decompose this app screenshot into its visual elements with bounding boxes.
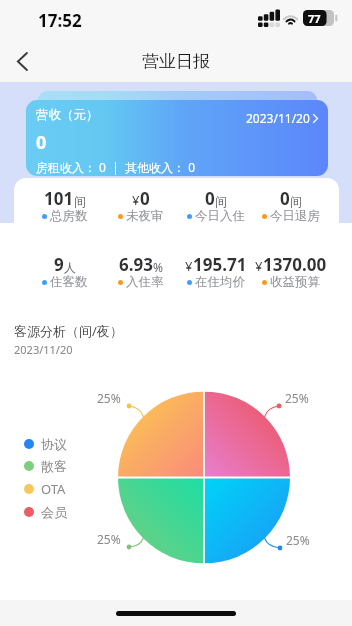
staticText: ¥ — [255, 257, 263, 275]
staticText: 77 — [308, 11, 321, 26]
staticText: 17:52 — [38, 9, 82, 32]
staticText: ¥ — [185, 257, 193, 275]
button[interactable]: Back — [0, 40, 44, 82]
staticText: 1370.00 — [263, 253, 327, 276]
staticText: 间 — [290, 194, 302, 209]
staticText: 在住均价 — [195, 274, 245, 290]
staticText: 195.71 — [193, 253, 247, 276]
staticText: 住客数 — [50, 274, 88, 290]
staticText: 25% — [286, 532, 310, 548]
staticText: 总房数 — [50, 208, 88, 224]
staticText: ¥ — [132, 191, 140, 209]
staticText: 今日退房 — [270, 208, 320, 224]
staticText: 2023/11/20 — [14, 342, 73, 357]
staticText: 协议 — [41, 436, 67, 452]
staticText: 2023/11/20 — [246, 110, 310, 126]
staticText: 101 — [44, 187, 74, 210]
staticText: 人 — [64, 260, 76, 275]
staticText: 营收（元） — [36, 107, 99, 123]
staticText: 25% — [285, 390, 309, 406]
staticText: 0 — [36, 130, 47, 155]
staticText: % — [153, 259, 163, 275]
staticText: 25% — [97, 390, 121, 406]
staticText: 房租收入： 0 | 其他收入： 0 — [36, 159, 196, 175]
staticText: 间 — [215, 194, 227, 209]
staticText: 9 — [54, 253, 64, 276]
staticText: 营业日报 — [142, 51, 210, 72]
staticText: 会员 — [41, 504, 67, 520]
button[interactable]: 营收（元） — [26, 100, 328, 176]
staticText: 散客 — [41, 458, 67, 474]
staticText: 0 — [140, 187, 150, 210]
staticText: 入住率 — [126, 274, 164, 290]
staticText: OTA — [41, 480, 66, 498]
staticText: 未夜审 — [126, 208, 164, 224]
staticText: 间 — [74, 194, 86, 209]
staticText: 6.93 — [119, 253, 153, 276]
staticText: 0 — [280, 187, 290, 210]
staticText: 客源分析（间/夜） — [14, 322, 123, 340]
staticText: 0 — [205, 187, 215, 210]
staticText: 收益预算 — [270, 274, 320, 290]
staticText: 25% — [97, 531, 121, 547]
staticText: 今日入住 — [195, 208, 245, 224]
